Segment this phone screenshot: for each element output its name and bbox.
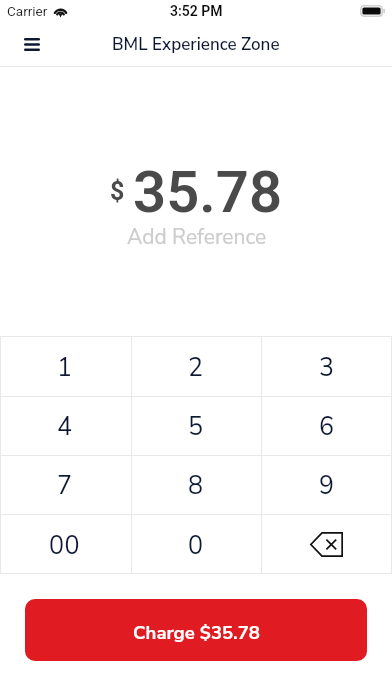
staticText: 5 bbox=[188, 410, 204, 444]
button[interactable]: 0 bbox=[130, 514, 261, 574]
button[interactable]: 2 bbox=[130, 336, 261, 395]
button[interactable]: 3 bbox=[261, 336, 392, 395]
button[interactable]: 8 bbox=[130, 454, 261, 514]
staticText: 1 bbox=[57, 351, 73, 385]
staticText: 7 bbox=[57, 469, 73, 503]
button[interactable]: Backspace bbox=[261, 514, 392, 574]
staticText: 2 bbox=[188, 351, 204, 385]
staticText: Carrier bbox=[7, 3, 48, 19]
button[interactable]: Menu bbox=[16, 28, 48, 60]
button[interactable]: 7 bbox=[0, 454, 130, 514]
staticText: BML Experience Zone bbox=[112, 33, 280, 56]
button[interactable]: 1 bbox=[0, 336, 130, 395]
button[interactable]: 6 bbox=[261, 395, 392, 454]
staticText: 8 bbox=[188, 469, 204, 503]
staticText: 9 bbox=[319, 469, 335, 503]
staticText: 0 bbox=[188, 529, 204, 563]
staticText: 3:52 PM bbox=[170, 3, 223, 19]
button[interactable]: 5 bbox=[130, 395, 261, 454]
button[interactable]: 00 bbox=[0, 514, 130, 574]
other: Backspace bbox=[310, 532, 343, 557]
staticText: $ bbox=[110, 177, 125, 206]
button[interactable]: 9 bbox=[261, 454, 392, 514]
button[interactable]: 4 bbox=[0, 395, 130, 454]
staticText: 4 bbox=[57, 410, 73, 444]
staticText: 00 bbox=[49, 529, 81, 563]
button[interactable]: Charge $35.78 bbox=[25, 599, 367, 661]
staticText: 6 bbox=[319, 410, 335, 444]
staticText: Charge $35.78 bbox=[133, 620, 260, 645]
staticText: 3 bbox=[319, 351, 335, 385]
staticText: 35.78 bbox=[133, 158, 283, 226]
staticText: Add Reference bbox=[127, 223, 267, 252]
